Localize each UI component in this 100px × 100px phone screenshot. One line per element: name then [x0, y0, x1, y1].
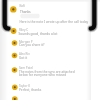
button[interactable]: Conversation list [0, 0, 100, 100]
